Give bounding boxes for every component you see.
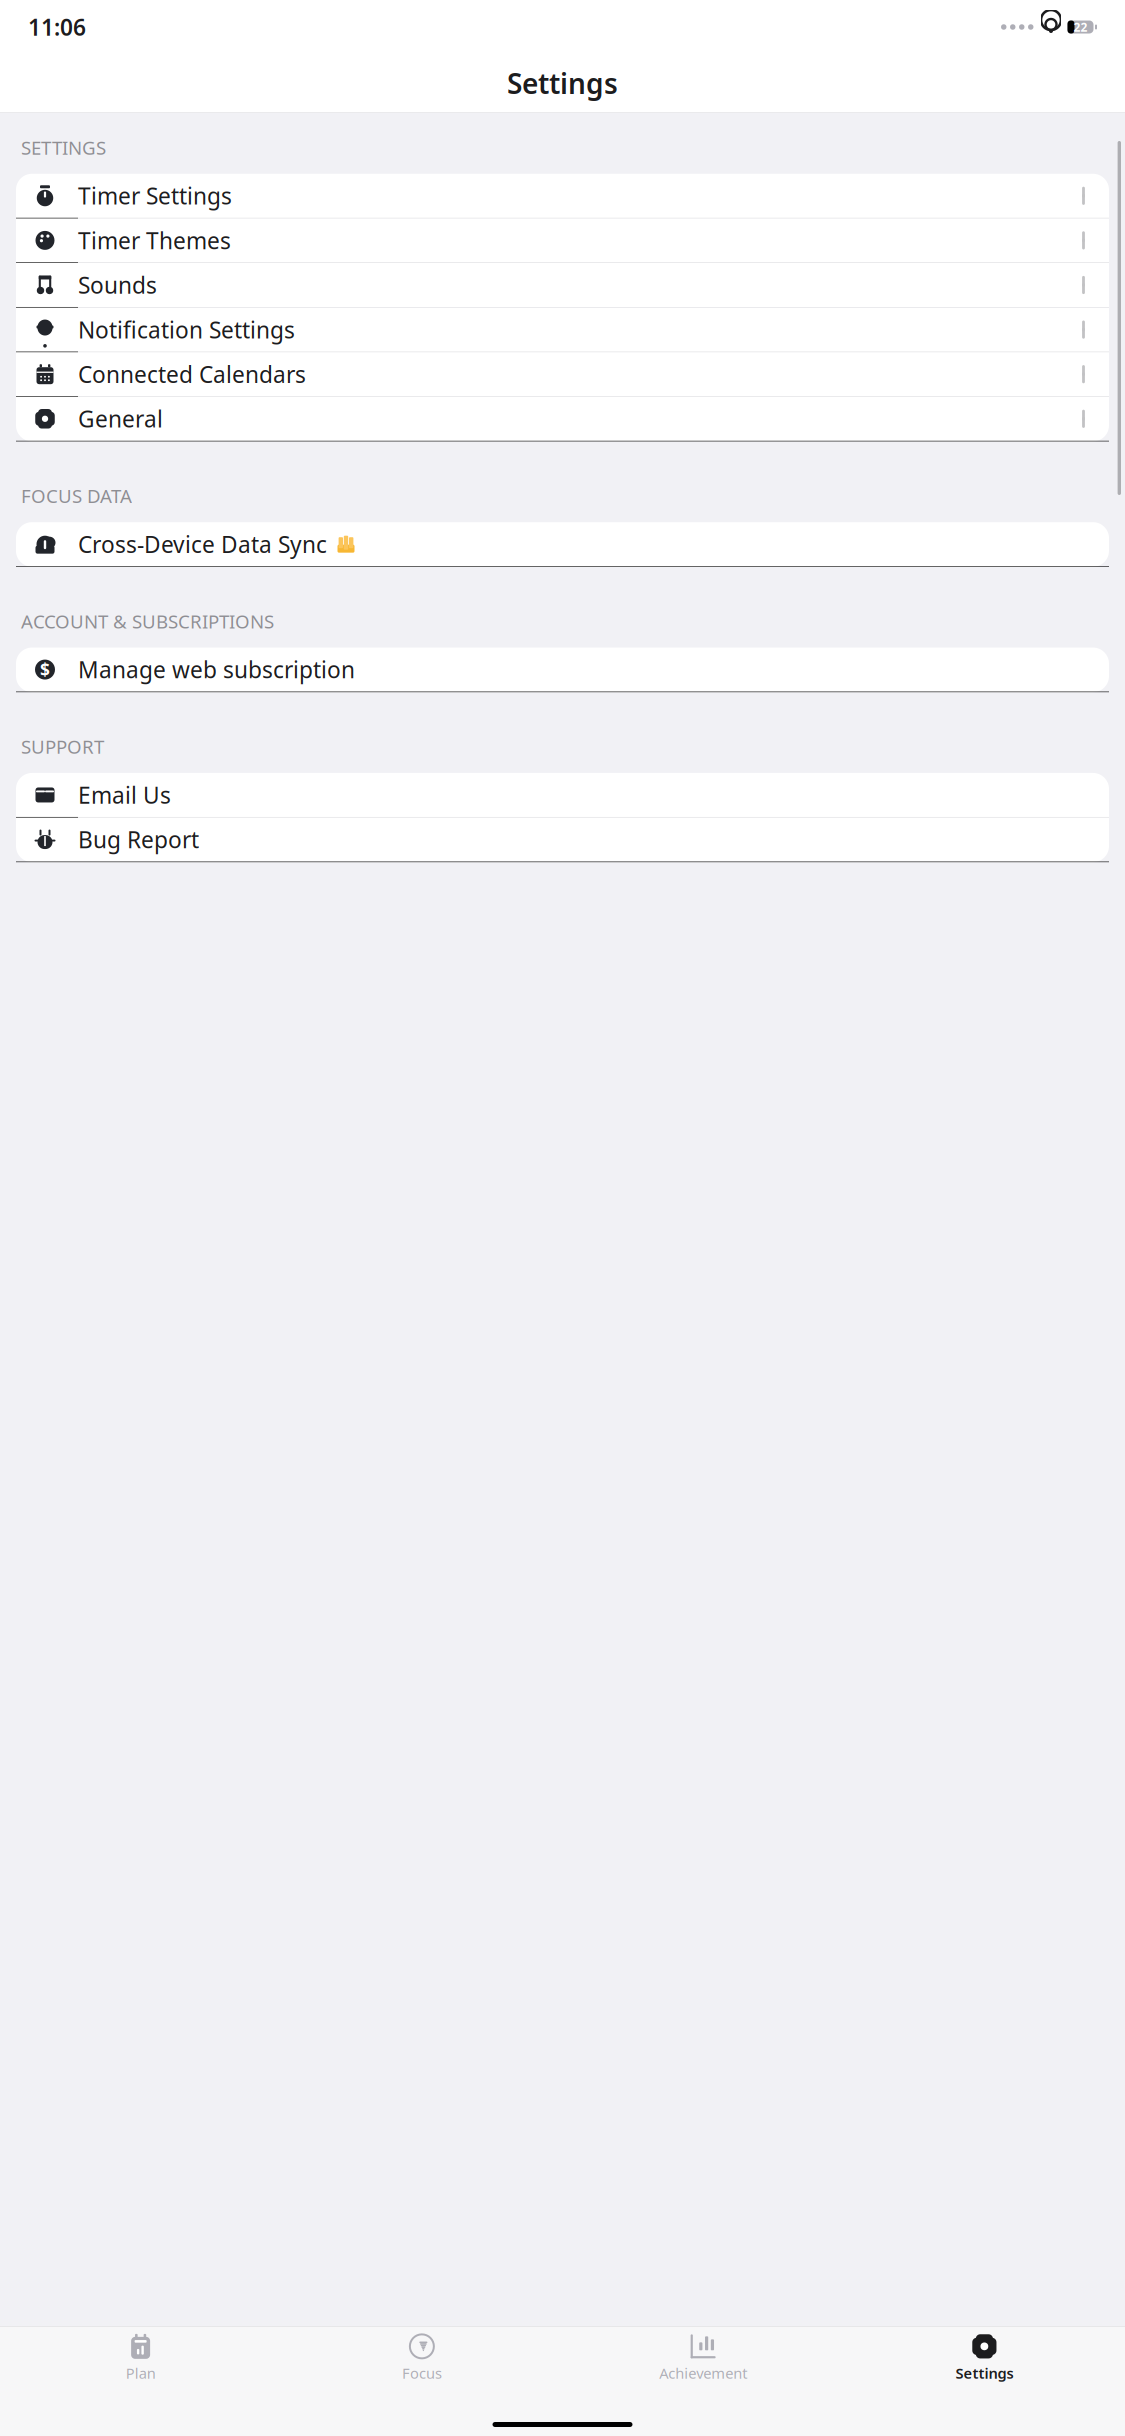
button[interactable]: Timer Settings (16, 174, 1109, 218)
button[interactable]: Notification Settings (16, 308, 1109, 352)
staticText: Bug Report (78, 824, 199, 855)
button[interactable]: Connected Calendars (16, 352, 1109, 397)
staticText: FOCUS DATA (21, 483, 132, 508)
staticText: SUPPORT (21, 734, 104, 759)
staticText: Achievement (659, 2363, 747, 2383)
staticText: Sounds (78, 270, 157, 300)
button[interactable]: Timer Themes (16, 218, 1109, 263)
staticText: Settings (955, 2363, 1013, 2383)
staticText: General (78, 404, 163, 434)
button[interactable]: General (16, 397, 1109, 441)
staticText: $ (40, 658, 50, 681)
staticText: Timer Themes (78, 225, 231, 255)
button[interactable]: $ (16, 648, 1109, 692)
staticText: Notification Settings (78, 314, 295, 345)
staticText: 11:06 (28, 12, 86, 42)
button[interactable]: Plan (0, 2326, 281, 2387)
button[interactable]: Bug Report (16, 818, 1109, 862)
staticText: Email Us (78, 780, 171, 810)
staticText: Connected Calendars (78, 359, 306, 389)
button[interactable]: Focus (281, 2326, 562, 2387)
staticText: ACCOUNT & SUBSCRIPTIONS (21, 609, 274, 634)
staticText: Plan (126, 2363, 156, 2383)
staticText: SETTINGS (21, 135, 106, 160)
staticText: Settings (507, 65, 618, 102)
staticText: Manage web subscription (78, 654, 355, 685)
button[interactable]: Sounds (16, 263, 1109, 308)
staticText: Timer Settings (78, 181, 232, 211)
button[interactable]: Cross-Device Data Sync (16, 522, 1109, 567)
button[interactable]: Email Us (16, 773, 1109, 818)
button[interactable]: Settings (844, 2326, 1125, 2387)
button[interactable]: Achievement (562, 2326, 844, 2387)
staticText: Focus (402, 2363, 442, 2383)
staticText: 22 (1073, 19, 1087, 35)
staticText: Cross-Device Data Sync (78, 529, 327, 559)
